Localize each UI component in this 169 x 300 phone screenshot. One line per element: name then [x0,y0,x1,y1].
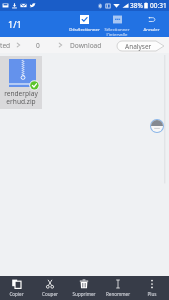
button[interactable]: Fast scroll [150,119,164,133]
staticText: Copier [0,291,33,297]
staticText: 1/1 [8,18,22,30]
staticText: Analyser [125,42,152,51]
button[interactable]: Download [70,41,102,50]
button[interactable]: 1/1 [0,11,30,37]
staticText: Plus [135,291,169,297]
button[interactable]: Analyser [117,41,164,51]
staticText: 38% [130,1,143,10]
button[interactable]: 0 [36,41,40,50]
staticText: renderplayerhud.zip [3,89,39,106]
staticText: Supprimer [67,291,101,297]
staticText: Couper [33,291,67,297]
button[interactable]: Plus [135,276,169,300]
staticText: Désélectionner [59,26,110,32]
button[interactable]: Supprimer [67,276,101,300]
staticText: Annuler [132,26,169,32]
staticText: Renommer [101,291,135,297]
button[interactable]: Sélectionner l'intervalle [94,11,140,37]
button[interactable]: Désélectionner [59,11,110,37]
button[interactable]: Annuler [132,11,169,37]
button[interactable]: Couper [33,276,67,300]
staticText: 00:31 [150,1,167,10]
staticText: Sélectionner l'intervalle [94,26,140,37]
button[interactable]: ted [0,41,11,50]
button[interactable]: Renommer [101,276,135,300]
button[interactable]: Copier [0,276,33,300]
button[interactable]: renderplayerhud.zip [0,56,42,109]
